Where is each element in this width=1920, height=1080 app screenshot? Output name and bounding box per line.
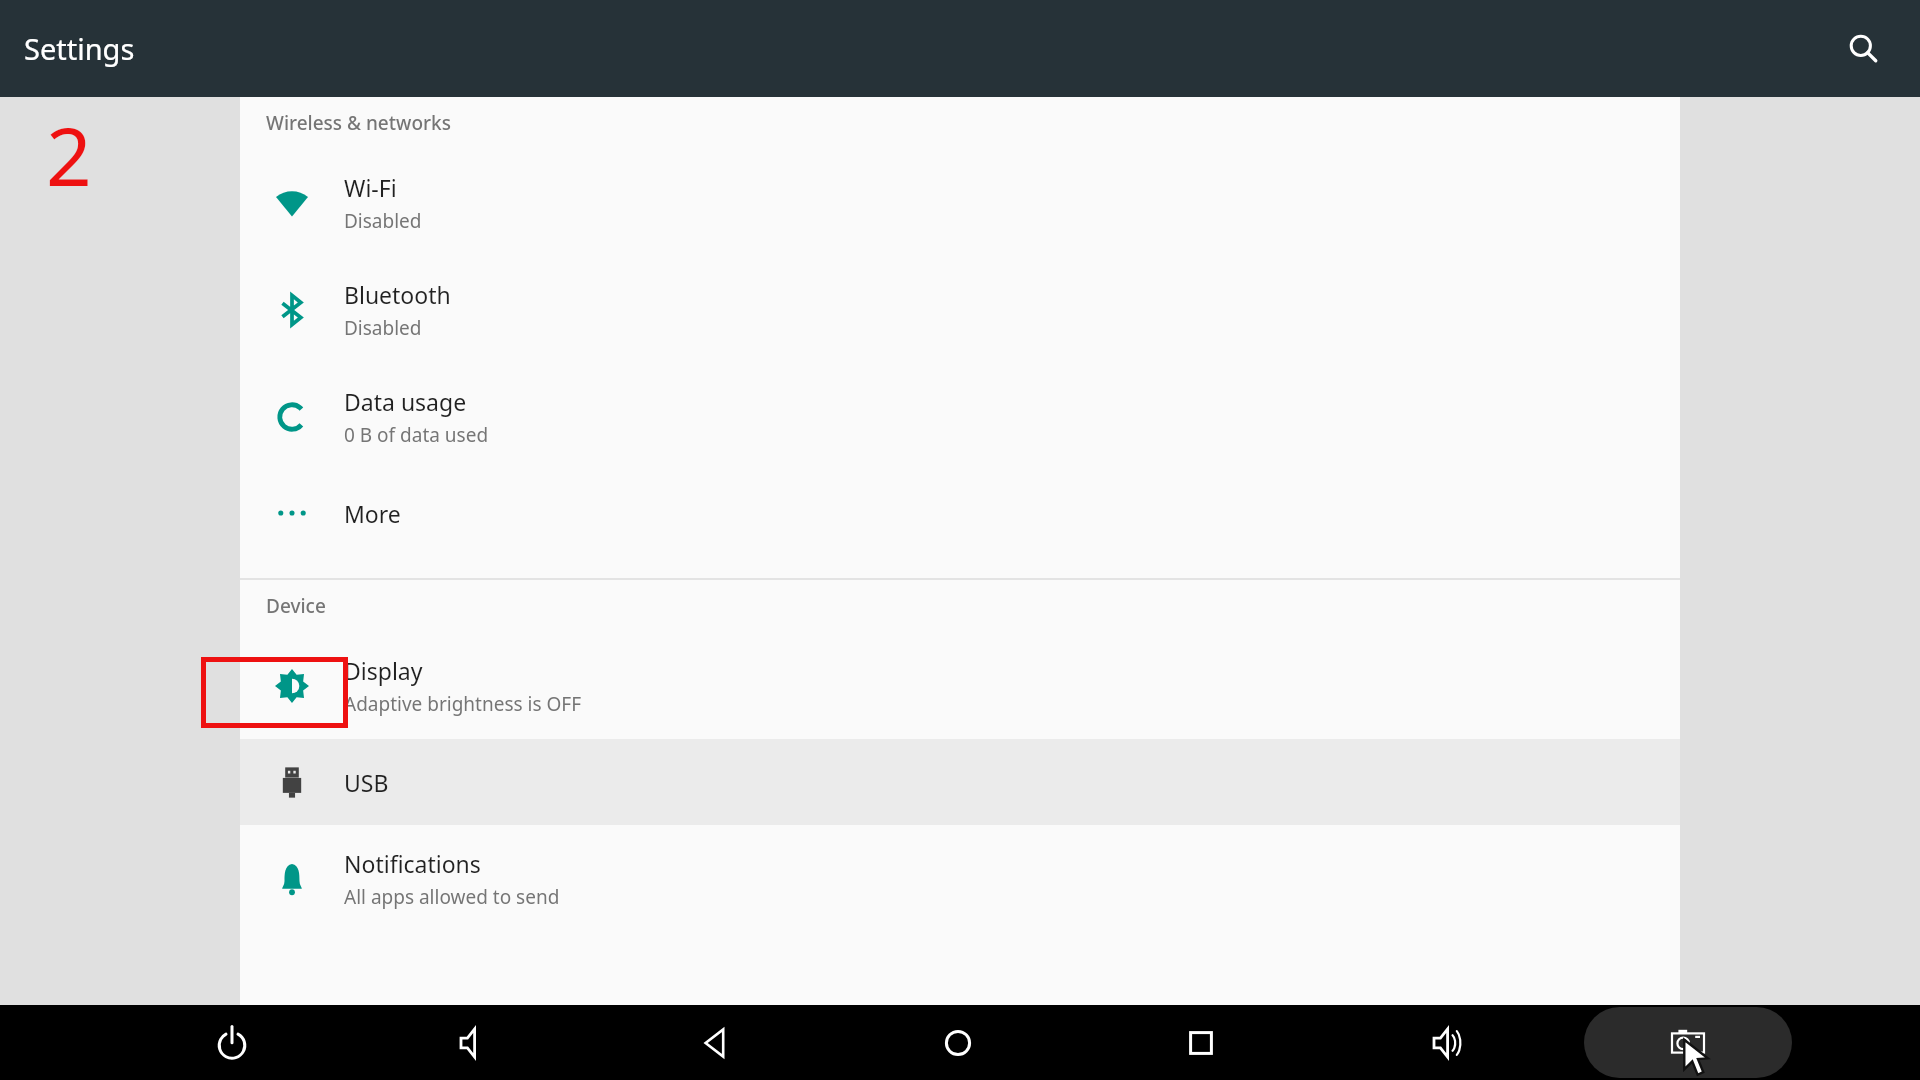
button[interactable]: Back: [656, 1005, 776, 1080]
staticText: USB: [344, 767, 389, 798]
button[interactable]: Volume down: [413, 1005, 533, 1080]
button[interactable]: Recents: [1141, 1005, 1261, 1080]
staticText: 2: [46, 100, 92, 209]
staticText: Wireless & networks: [266, 110, 451, 136]
staticText: Display: [344, 655, 423, 686]
staticText: Adaptive brightness is OFF: [344, 691, 582, 717]
button[interactable]: Notifications: [240, 825, 1680, 932]
staticText: All apps allowed to send: [344, 884, 560, 910]
button[interactable]: Wi-Fi: [240, 149, 1680, 256]
staticText: Data usage: [344, 386, 467, 417]
staticText: Disabled: [344, 208, 422, 234]
staticText: Disabled: [344, 315, 422, 341]
button[interactable]: Data usage: [240, 363, 1680, 470]
staticText: 0 B of data used: [344, 422, 489, 448]
staticText: Notifications: [344, 848, 481, 879]
staticText: Device: [266, 593, 326, 619]
staticText: More: [344, 498, 401, 529]
button[interactable]: Display: [240, 632, 1680, 739]
staticText: Wi-Fi: [344, 172, 397, 203]
button[interactable]: Screenshot: [1584, 1005, 1792, 1080]
staticText: Settings: [24, 29, 135, 68]
staticText: Bluetooth: [344, 279, 451, 310]
button[interactable]: USB: [240, 739, 1680, 825]
button[interactable]: Bluetooth: [240, 256, 1680, 363]
button[interactable]: Search: [1834, 19, 1894, 79]
button[interactable]: Home: [898, 1005, 1018, 1080]
button[interactable]: More: [240, 470, 1680, 556]
button[interactable]: Volume up: [1386, 1005, 1506, 1080]
button[interactable]: Power: [172, 1005, 292, 1080]
